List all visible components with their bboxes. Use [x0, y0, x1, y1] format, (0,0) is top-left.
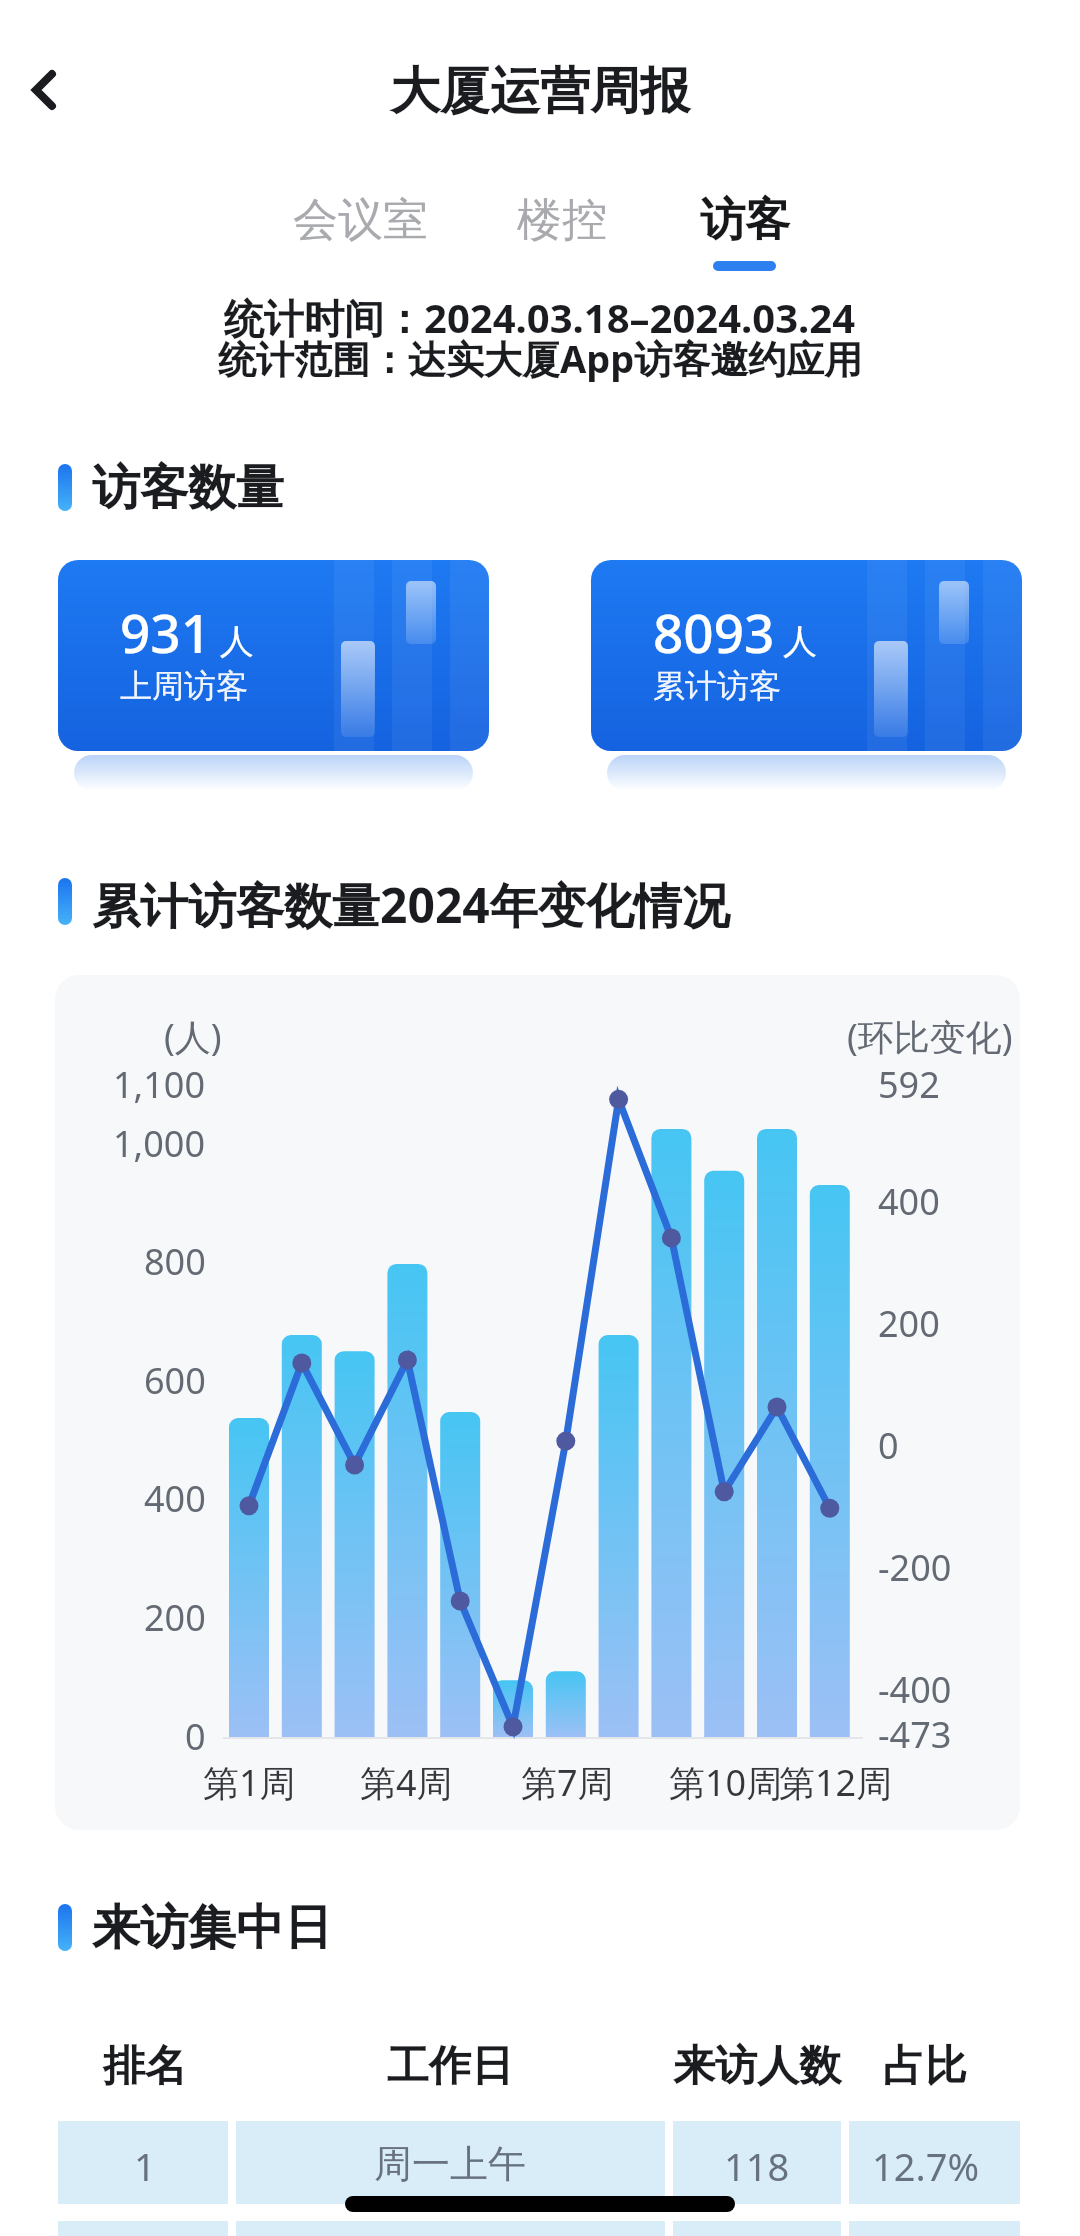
staticText: 592 [878, 1060, 940, 1109]
staticText: 1,100 [113, 1060, 206, 1109]
staticText: 统计时间：2024.03.18–2024.03.24 [224, 290, 856, 345]
staticText: 118 [724, 2140, 790, 2192]
staticText: -400 [878, 1665, 952, 1714]
staticText: 400 [144, 1474, 206, 1523]
button[interactable]: 会议室 [270, 180, 450, 260]
staticText: 200 [144, 1593, 206, 1642]
staticText: 第1周 [203, 1758, 296, 1807]
staticText: 第12周 [779, 1758, 893, 1807]
staticText: 访客 [700, 192, 790, 249]
button[interactable] [58, 2121, 228, 2204]
button[interactable] [236, 2121, 665, 2204]
button[interactable] [673, 2121, 841, 2204]
staticText: 上周访客 [120, 666, 248, 706]
staticText: 统计范围：达实大厦App访客邀约应用 [218, 332, 863, 384]
button[interactable] [849, 2121, 1020, 2204]
staticText: 200 [878, 1299, 940, 1348]
button[interactable] [16, 54, 80, 126]
button[interactable]: 访客 [675, 180, 815, 260]
staticText: 931 人 [120, 596, 254, 668]
staticText: (环比变化) [847, 1012, 1013, 1061]
staticText: 访客数量 [92, 458, 284, 518]
staticText: 1,000 [113, 1119, 206, 1168]
button[interactable] [55, 975, 1020, 1830]
staticText: -200 [878, 1543, 952, 1592]
staticText: 400 [878, 1177, 940, 1226]
staticText: 排名 [103, 2040, 187, 2093]
staticText: 来访集中日 [92, 1898, 332, 1958]
button[interactable]: 8093 人 [591, 560, 1022, 751]
staticText: 800 [144, 1237, 206, 1286]
staticText: 第4周 [360, 1758, 453, 1807]
staticText: 1 [134, 2140, 156, 2192]
staticText: 累计访客 [653, 666, 781, 706]
staticText: 8093 人 [653, 596, 818, 668]
staticText: 12.7% [872, 2140, 979, 2192]
staticText: 占比 [883, 2040, 967, 2093]
button[interactable]: 931 人 [58, 560, 489, 751]
staticText: 会议室 [293, 192, 428, 249]
staticText: 楼控 [517, 192, 607, 249]
staticText: 来访人数 [673, 2040, 841, 2093]
button[interactable]: 楼控 [492, 180, 632, 260]
staticText: 第10周 [669, 1758, 783, 1807]
staticText: 600 [144, 1356, 206, 1405]
staticText: -473 [878, 1710, 952, 1759]
staticText: 0 [185, 1712, 206, 1761]
staticText: 大厦运营周报 [390, 60, 690, 123]
staticText: 第7周 [521, 1758, 614, 1807]
staticText: 周一上午 [374, 2140, 526, 2188]
staticText: (人) [164, 1012, 222, 1061]
staticText: 0 [878, 1421, 899, 1470]
staticText: 累计访客数量2024年变化情况 [92, 872, 730, 938]
staticText: 工作日 [387, 2040, 513, 2093]
